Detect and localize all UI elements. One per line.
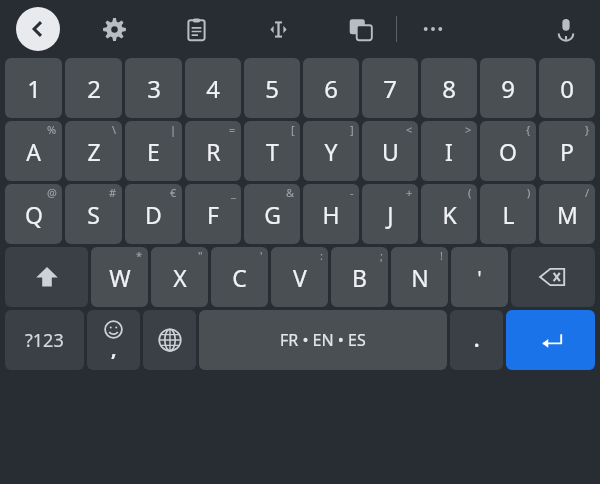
- staticText: *: [136, 248, 143, 263]
- button[interactable]: Clipboard: [174, 7, 218, 51]
- staticText: B: [352, 262, 367, 293]
- button[interactable]: Back: [16, 7, 60, 51]
- button[interactable]: O: [480, 121, 536, 181]
- button[interactable]: ': [451, 247, 508, 307]
- staticText: W: [109, 262, 131, 293]
- staticText: (: [468, 185, 472, 200]
- button[interactable]: N: [391, 247, 448, 307]
- staticText: C: [232, 262, 247, 293]
- staticText: /: [585, 185, 590, 200]
- button[interactable]: J: [362, 184, 418, 244]
- staticText: ): [527, 185, 531, 200]
- staticText: G: [264, 199, 281, 230]
- button[interactable]: 1: [5, 58, 62, 118]
- staticText: V: [293, 262, 307, 293]
- staticText: {: [526, 122, 531, 137]
- staticText: _: [231, 185, 236, 200]
- staticText: E: [147, 136, 160, 167]
- button[interactable]: Q: [5, 184, 62, 244]
- staticText: O: [499, 136, 517, 167]
- button[interactable]: W: [91, 247, 148, 307]
- staticText: %: [47, 122, 57, 137]
- button[interactable]: Voice input: [544, 7, 588, 51]
- staticText: <: [406, 122, 413, 137]
- staticText: .: [474, 327, 480, 353]
- button[interactable]: Settings: [92, 7, 136, 51]
- button[interactable]: 8: [421, 58, 477, 118]
- button[interactable]: M: [539, 184, 595, 244]
- button[interactable]: Backspace: [511, 247, 595, 307]
- staticText: L: [502, 199, 515, 230]
- staticText: ]: [350, 122, 354, 137]
- staticText: Q: [25, 199, 43, 230]
- staticText: ,: [111, 336, 117, 362]
- button[interactable]: 2: [65, 58, 122, 118]
- staticText: M: [557, 199, 578, 230]
- staticText: }: [585, 122, 590, 137]
- button[interactable]: 0: [539, 58, 595, 118]
- staticText: T: [266, 136, 279, 167]
- button[interactable]: 5: [244, 58, 300, 118]
- staticText: =: [229, 122, 236, 137]
- button[interactable]: .: [450, 310, 503, 370]
- button[interactable]: F: [185, 184, 241, 244]
- staticText: #: [109, 185, 117, 200]
- staticText: Y: [324, 136, 338, 167]
- button[interactable]: Change language: [143, 310, 196, 370]
- staticText: ': [260, 248, 263, 263]
- button[interactable]: Y: [303, 121, 359, 181]
- button[interactable]: 7: [362, 58, 418, 118]
- button[interactable]: V: [271, 247, 328, 307]
- button[interactable]: X: [151, 247, 208, 307]
- staticText: >: [465, 122, 472, 137]
- button[interactable]: More options: [411, 7, 455, 51]
- button[interactable]: Move cursor: [256, 7, 300, 51]
- staticText: J: [387, 199, 394, 230]
- staticText: &: [286, 185, 295, 200]
- staticText: @: [47, 185, 57, 200]
- button[interactable]: I: [421, 121, 477, 181]
- staticText: 4: [206, 72, 220, 105]
- button[interactable]: S: [65, 184, 122, 244]
- button[interactable]: R: [185, 121, 241, 181]
- staticText: 9: [501, 72, 515, 105]
- staticText: D: [145, 199, 162, 230]
- staticText: R: [206, 136, 221, 167]
- staticText: I: [445, 136, 453, 167]
- button[interactable]: Z: [65, 121, 122, 181]
- button[interactable]: H: [303, 184, 359, 244]
- staticText: U: [382, 136, 399, 167]
- button[interactable]: FR • EN • ES: [199, 310, 447, 370]
- button[interactable]: Shift: [5, 247, 88, 307]
- button[interactable]: Emoji: [87, 310, 140, 370]
- button[interactable]: B: [331, 247, 388, 307]
- staticText: P: [560, 136, 574, 167]
- staticText: 3: [147, 72, 161, 105]
- staticText: X: [173, 262, 187, 293]
- staticText: FR • EN • ES: [280, 329, 366, 351]
- button[interactable]: K: [421, 184, 477, 244]
- button[interactable]: G: [244, 184, 300, 244]
- button[interactable]: C: [211, 247, 268, 307]
- button[interactable]: U: [362, 121, 418, 181]
- staticText: 5: [265, 72, 279, 105]
- staticText: K: [442, 199, 457, 230]
- staticText: |: [170, 122, 177, 137]
- button[interactable]: ?123: [5, 310, 84, 370]
- button[interactable]: E: [125, 121, 182, 181]
- staticText: F: [207, 199, 219, 230]
- button[interactable]: 3: [125, 58, 182, 118]
- button[interactable]: P: [539, 121, 595, 181]
- button[interactable]: Enter: [506, 310, 595, 370]
- staticText: ?123: [25, 328, 64, 353]
- button[interactable]: 4: [185, 58, 241, 118]
- staticText: 1: [27, 72, 41, 105]
- button[interactable]: Translate: [338, 7, 382, 51]
- button[interactable]: 6: [303, 58, 359, 118]
- button[interactable]: D: [125, 184, 182, 244]
- staticText: 6: [324, 72, 338, 105]
- button[interactable]: L: [480, 184, 536, 244]
- button[interactable]: T: [244, 121, 300, 181]
- button[interactable]: A: [5, 121, 62, 181]
- button[interactable]: 9: [480, 58, 536, 118]
